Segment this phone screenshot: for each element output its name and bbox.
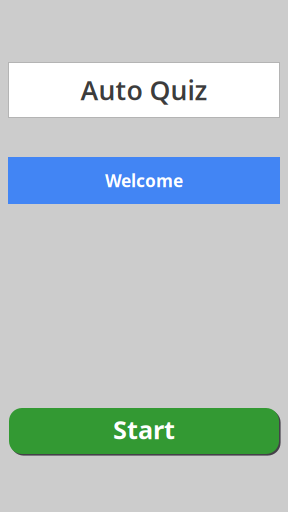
staticText: Start — [113, 412, 175, 447]
button[interactable]: Start — [9, 408, 279, 454]
staticText: Welcome — [105, 169, 183, 192]
staticText: Auto Quiz — [80, 72, 207, 108]
